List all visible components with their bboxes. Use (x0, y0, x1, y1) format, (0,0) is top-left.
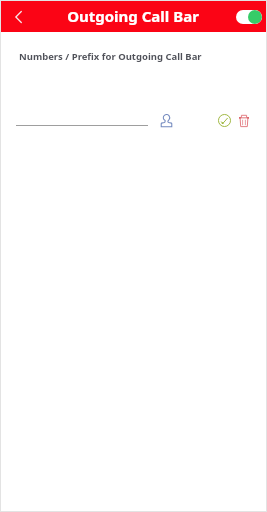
button[interactable]: Number or prefix (16, 112, 148, 126)
button[interactable]: Toggle Outgoing Call Bar (236, 10, 262, 24)
button[interactable]: Back (3, 2, 33, 32)
button[interactable]: Confirm (213, 109, 236, 131)
staticText: Numbers / Prefix for Outgoing Call Bar (19, 50, 202, 63)
button[interactable]: Delete (232, 109, 255, 131)
button[interactable]: Pick contact (155, 110, 178, 132)
staticText: Outgoing Call Bar (67, 6, 199, 26)
